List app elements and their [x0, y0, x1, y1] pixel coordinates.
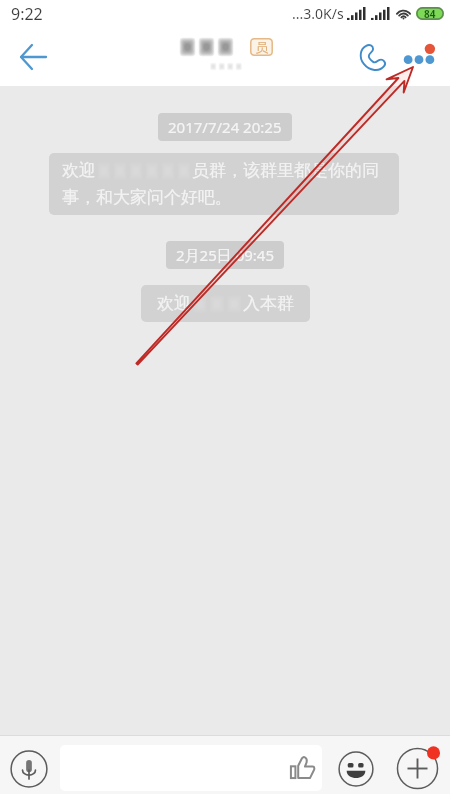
staticText: 员群，该群里都是你的同 — [192, 160, 379, 181]
staticText: 2017/7/24 20:25 — [168, 117, 282, 137]
button[interactable]: More — [395, 746, 440, 791]
staticText: 9:22 — [11, 3, 43, 25]
button[interactable]: 欢迎 — [141, 285, 310, 322]
staticText: 事，和大家问个好吧。 — [62, 187, 232, 208]
staticText: 入本群 — [243, 293, 294, 314]
staticText: 欢迎 — [157, 293, 191, 314]
staticText: 2月25日 09:45 — [176, 245, 274, 265]
staticText: 员 — [255, 39, 268, 55]
staticText: 欢迎 — [62, 160, 96, 181]
button[interactable]: Back — [9, 33, 57, 81]
button[interactable]: Voice message — [8, 748, 49, 789]
button[interactable]: More options — [396, 34, 442, 80]
button[interactable] — [60, 745, 322, 791]
staticText: ...3.0K/s — [292, 4, 344, 23]
button[interactable]: Emoji — [336, 749, 375, 788]
button[interactable]: Call — [349, 34, 395, 80]
button[interactable]: 欢迎 — [49, 153, 399, 215]
staticText: 84 — [424, 7, 436, 20]
